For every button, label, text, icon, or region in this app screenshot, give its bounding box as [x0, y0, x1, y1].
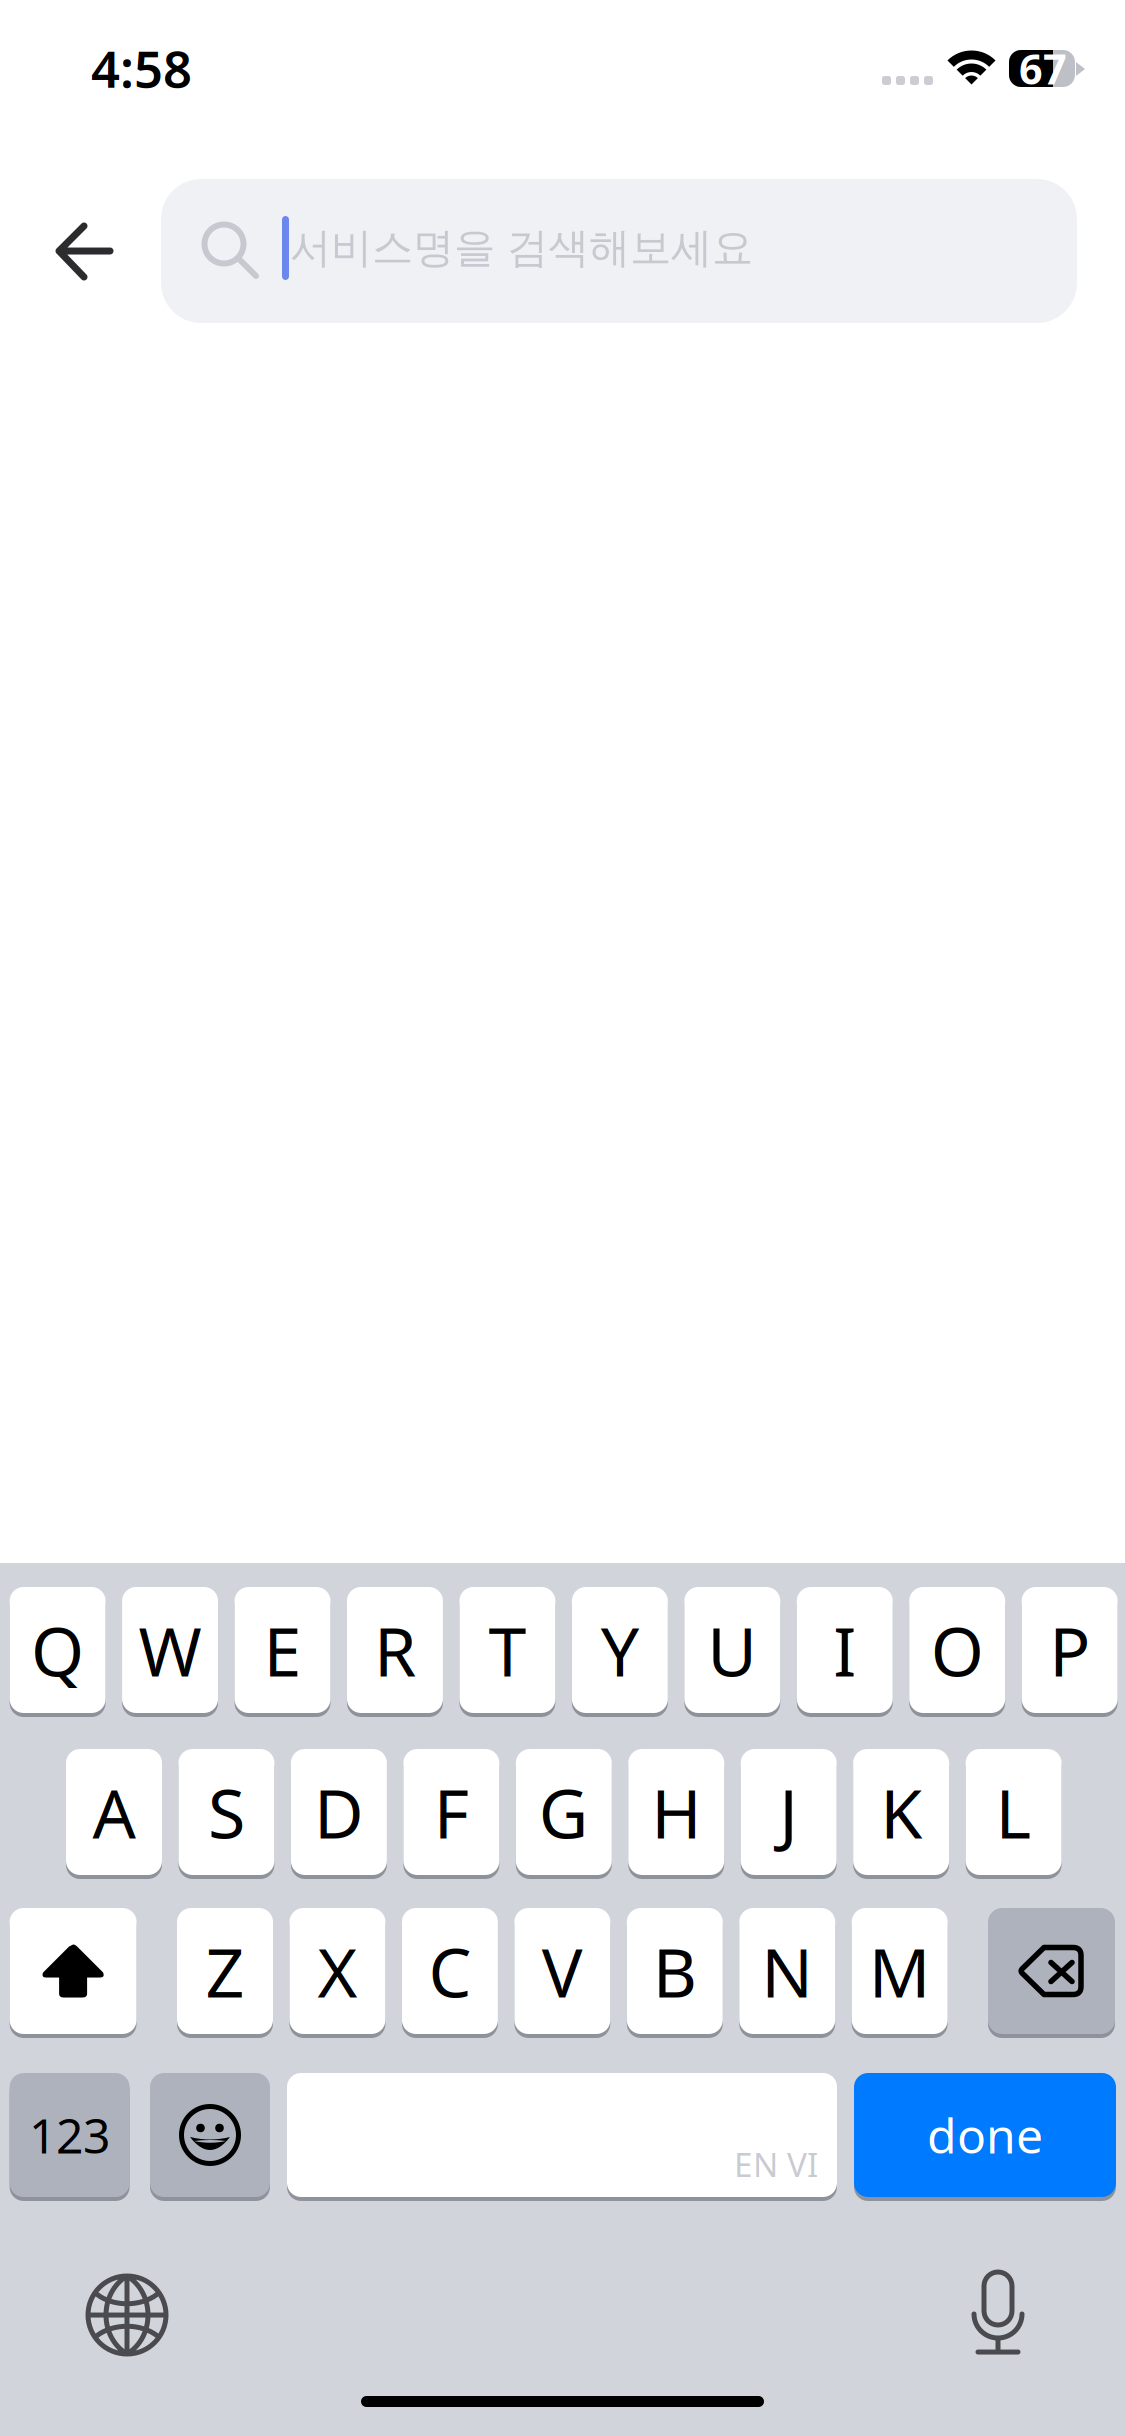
button[interactable]: A [66, 1747, 162, 1877]
button[interactable]: Dictation [970, 2270, 1026, 2355]
staticText: 서비스명을 검색해보세요 [290, 223, 753, 273]
staticText: V [542, 1926, 583, 2016]
staticText: W [139, 1605, 202, 1695]
button[interactable]: N [739, 1906, 835, 2036]
staticText: U [707, 1605, 757, 1695]
staticText: 67 [1019, 41, 1067, 96]
button[interactable]: E [234, 1585, 330, 1715]
button[interactable]: M [852, 1906, 948, 2036]
button[interactable]: W [122, 1585, 218, 1715]
staticText: EN VI [734, 2142, 818, 2186]
staticText: D [314, 1767, 364, 1857]
button[interactable]: 123 [10, 2071, 130, 2199]
button[interactable]: J [741, 1747, 837, 1877]
button[interactable]: Emoji [150, 2071, 270, 2199]
button[interactable]: Space [287, 2071, 837, 2199]
staticText: L [996, 1767, 1032, 1857]
button[interactable]: U [684, 1585, 780, 1715]
button[interactable]: Delete [988, 1906, 1115, 2036]
button[interactable]: Shift [10, 1906, 137, 2036]
staticText: F [434, 1767, 469, 1857]
staticText: done [927, 2103, 1043, 2167]
staticText: A [92, 1767, 135, 1857]
staticText: R [374, 1605, 416, 1695]
button[interactable]: 서비스명을 검색해보세요 [161, 179, 1077, 323]
staticText: M [869, 1926, 931, 2016]
staticText: Q [31, 1605, 84, 1695]
button[interactable]: B [627, 1906, 723, 2036]
button[interactable]: V [514, 1906, 610, 2036]
button[interactable]: Y [572, 1585, 668, 1715]
button[interactable]: L [966, 1747, 1062, 1877]
button[interactable]: X [289, 1906, 385, 2036]
staticText: C [428, 1926, 471, 2016]
button[interactable]: Back [14, 191, 154, 311]
button[interactable]: S [178, 1747, 274, 1877]
button[interactable]: H [628, 1747, 724, 1877]
button[interactable]: Q [10, 1585, 106, 1715]
staticText: Y [601, 1605, 639, 1695]
staticText: H [651, 1767, 701, 1857]
button[interactable]: O [909, 1585, 1005, 1715]
button[interactable]: Z [177, 1906, 273, 2036]
button[interactable]: I [797, 1585, 893, 1715]
button[interactable]: C [402, 1906, 498, 2036]
staticText: B [653, 1926, 697, 2016]
staticText: E [263, 1605, 301, 1695]
button[interactable]: R [347, 1585, 443, 1715]
staticText: T [488, 1605, 526, 1695]
button[interactable]: Next keyboard [85, 2273, 169, 2357]
staticText: O [931, 1605, 984, 1695]
staticText: Z [205, 1926, 244, 2016]
staticText: N [761, 1926, 813, 2016]
button[interactable]: done [854, 2071, 1116, 2199]
button[interactable]: D [291, 1747, 387, 1877]
button[interactable]: F [403, 1747, 499, 1877]
button[interactable]: K [853, 1747, 949, 1877]
staticText: J [779, 1767, 798, 1857]
button[interactable]: G [516, 1747, 612, 1877]
staticText: X [317, 1926, 357, 2016]
staticText: S [208, 1767, 245, 1857]
staticText: 123 [29, 2103, 110, 2167]
staticText: I [833, 1605, 856, 1695]
staticText: 4:58 [91, 34, 192, 102]
staticText: P [1049, 1605, 1090, 1695]
button[interactable]: T [459, 1585, 555, 1715]
staticText: K [880, 1767, 922, 1857]
staticText: G [539, 1767, 589, 1857]
button[interactable]: P [1022, 1585, 1118, 1715]
